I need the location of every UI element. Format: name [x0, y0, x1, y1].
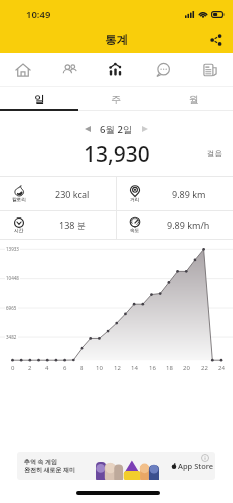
- staticText: 추억 속 게임: [24, 458, 58, 466]
- staticText: 230 kcal: [55, 188, 90, 200]
- staticText: 일: [34, 93, 44, 106]
- button[interactable]: Previous day: [78, 120, 98, 138]
- staticText: 주: [111, 93, 121, 106]
- button[interactable]: Statistics: [92, 53, 139, 86]
- staticText: 칼로리: [12, 197, 26, 203]
- button[interactable]: 주: [77, 87, 155, 111]
- staticText: 138 분: [59, 219, 86, 231]
- staticText: 3482: [6, 334, 17, 340]
- staticText: 20: [183, 364, 190, 372]
- staticText: App Store: [178, 461, 214, 471]
- staticText: 6965: [6, 305, 17, 311]
- staticText: 완전히 새로운 재미: [24, 466, 76, 474]
- staticText: 6월 2일: [100, 123, 133, 136]
- button[interactable]: Ad info: [201, 454, 209, 462]
- button[interactable]: 거리: [116, 177, 233, 210]
- staticText: 18: [166, 364, 173, 372]
- button[interactable]: Home: [0, 53, 46, 86]
- button[interactable]: Friends: [46, 53, 92, 86]
- staticText: 24: [218, 364, 225, 372]
- staticText: 9.89 km/h: [167, 219, 210, 231]
- button[interactable]: Messages: [139, 53, 186, 86]
- button[interactable]: News: [186, 53, 233, 86]
- staticText: 시간: [14, 228, 24, 234]
- button[interactable]: 속도: [116, 211, 233, 239]
- staticText: 2: [28, 364, 32, 372]
- staticText: 통계: [105, 33, 128, 47]
- staticText: 9.89 km: [172, 188, 206, 200]
- button[interactable]: Share: [205, 29, 227, 51]
- staticText: 4: [45, 364, 49, 372]
- staticText: 16: [149, 364, 156, 372]
- staticText: 8: [80, 364, 84, 372]
- staticText: 13,930: [84, 140, 150, 166]
- staticText: 걸음: [207, 149, 222, 158]
- staticText: 10: [96, 364, 103, 372]
- staticText: 22: [201, 364, 208, 372]
- staticText: 0: [11, 364, 15, 372]
- staticText: 13933: [6, 246, 19, 252]
- staticText: 14: [131, 364, 138, 372]
- staticText: 거리: [130, 197, 140, 203]
- button[interactable]: Next day: [135, 120, 155, 138]
- staticText: 월: [189, 93, 199, 106]
- staticText: 10:49: [26, 8, 51, 21]
- button[interactable]: 칼로리: [0, 177, 116, 210]
- button[interactable]: 시간: [0, 211, 116, 239]
- button[interactable]: 일: [0, 87, 77, 111]
- staticText: 6: [63, 364, 67, 372]
- staticText: 10448: [6, 275, 19, 281]
- staticText: 12: [114, 364, 121, 372]
- button[interactable]: 추억 속 게임: [17, 452, 215, 480]
- button[interactable]: 월: [155, 87, 233, 111]
- staticText: 속도: [130, 228, 140, 234]
